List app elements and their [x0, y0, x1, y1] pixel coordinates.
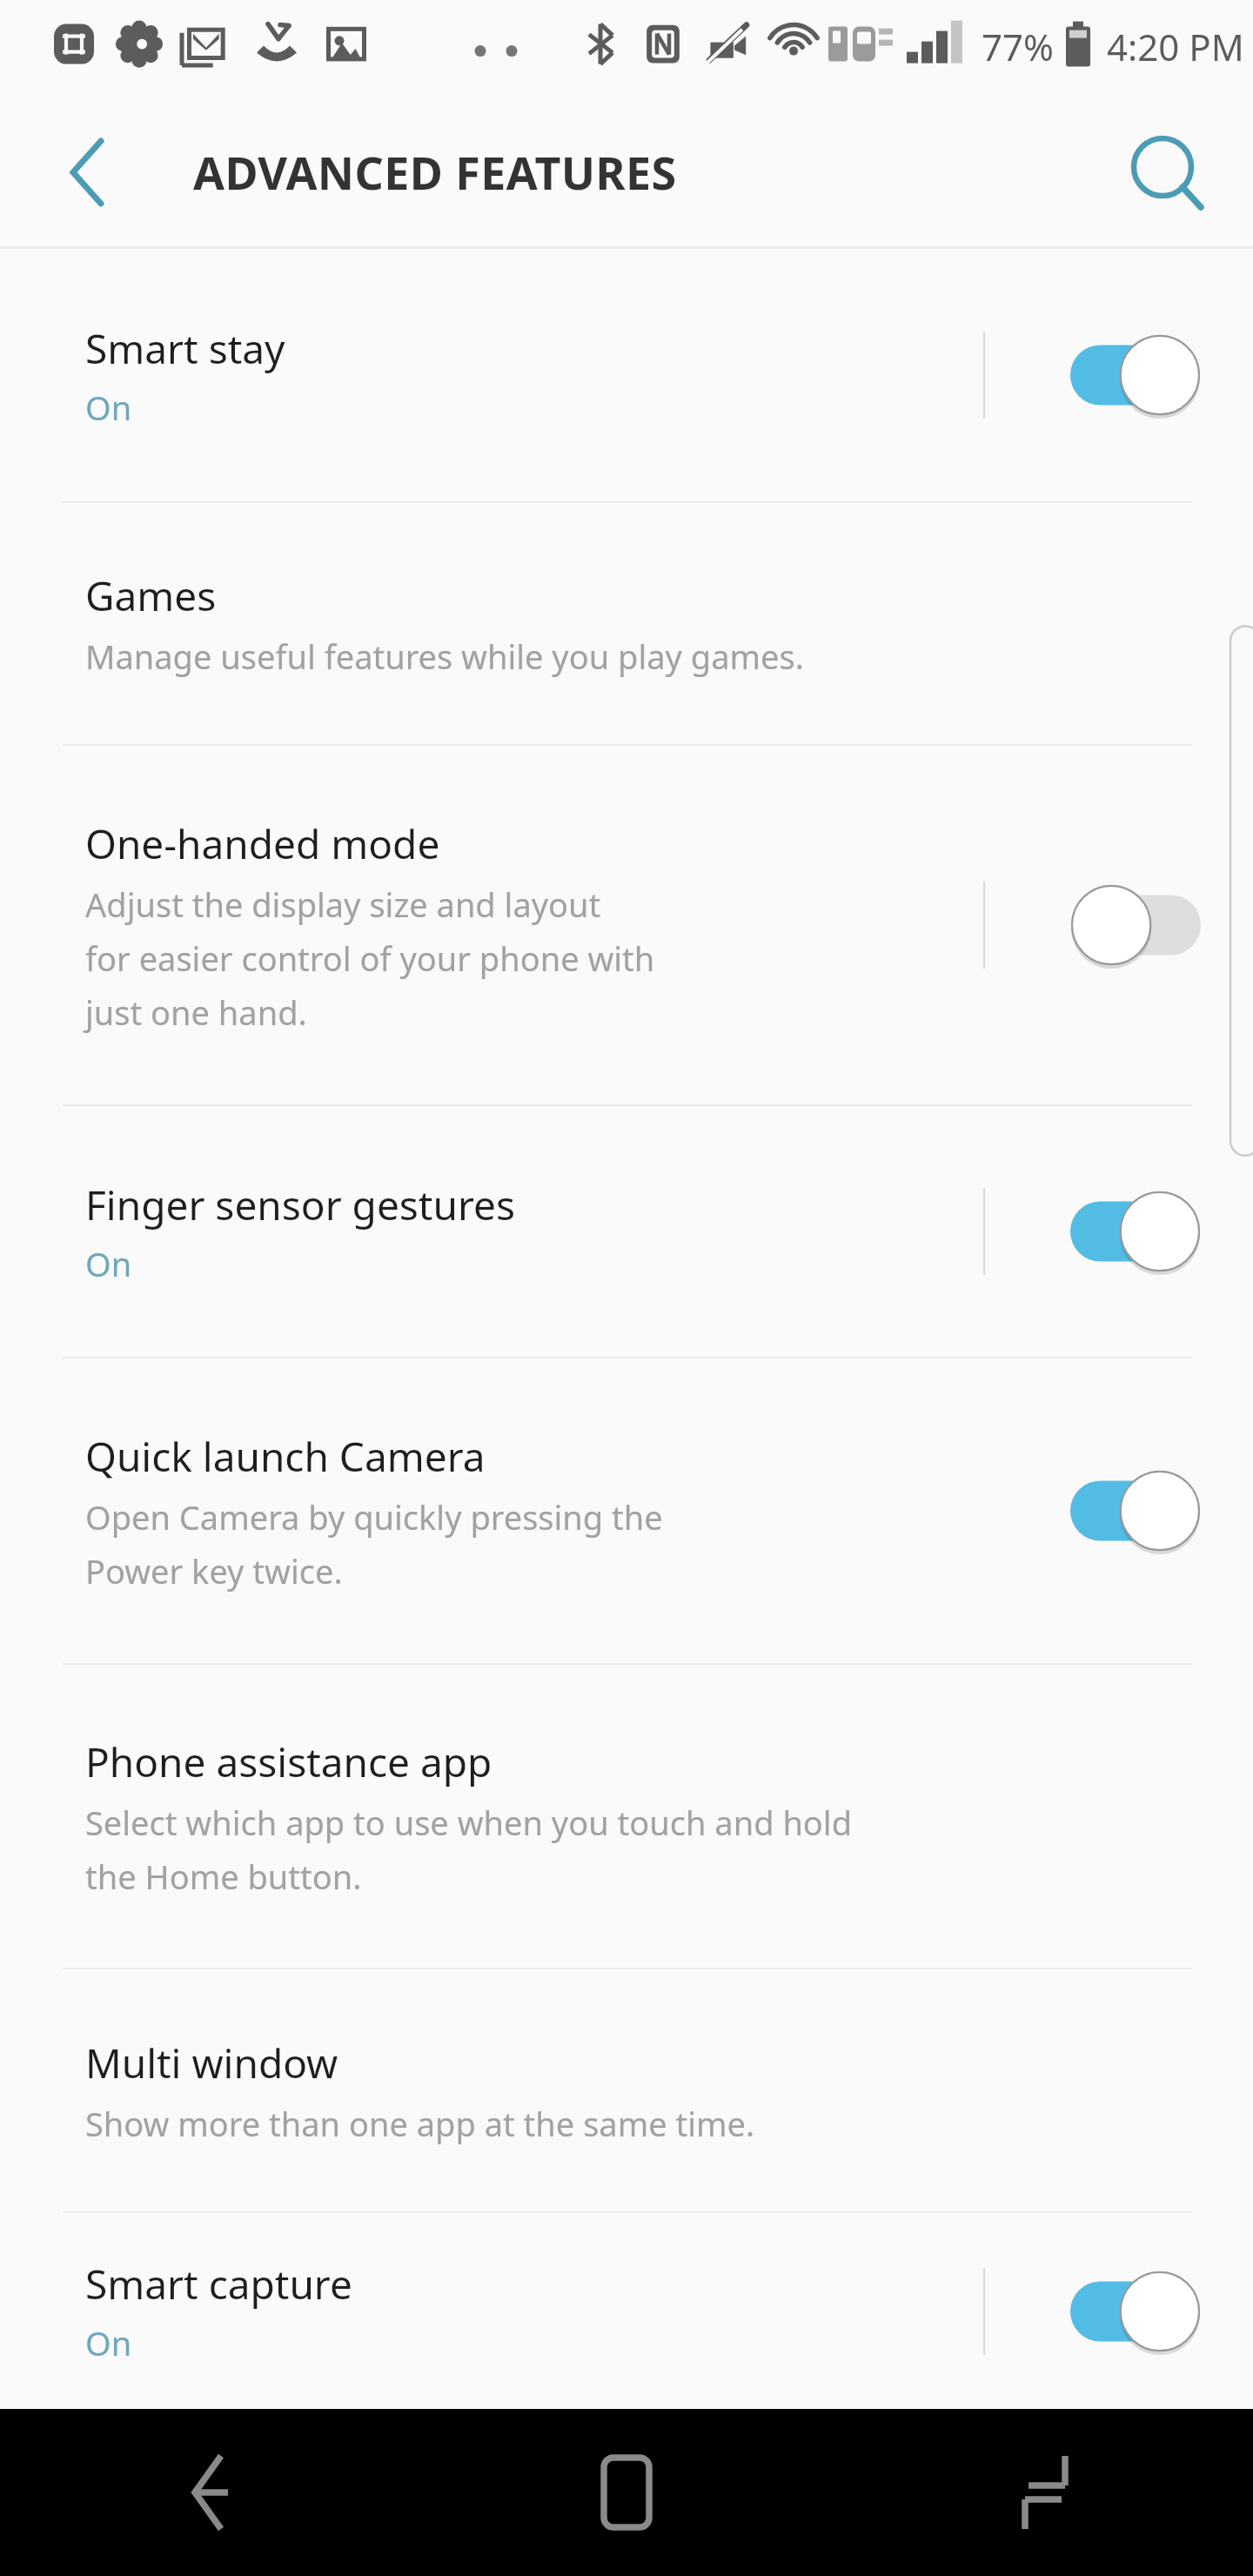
staticText: One-handed mode	[85, 816, 440, 871]
staticText: Finger sensor gestures	[85, 1177, 515, 1232]
staticText: Games	[85, 568, 217, 623]
button[interactable]: Quick launch Camera	[0, 1358, 1253, 1663]
button[interactable]: Home	[418, 2409, 835, 2576]
button[interactable]: One-handed mode	[0, 746, 1253, 1104]
staticText: Adjust the display size and layout for e…	[85, 882, 655, 1035]
button[interactable]: Back	[0, 2409, 418, 2576]
staticText: 4:20 PM	[1107, 22, 1244, 71]
button[interactable]: Toggle on	[983, 249, 1253, 501]
staticText: Quick launch Camera	[85, 1429, 486, 1484]
button[interactable]: Back	[35, 120, 139, 225]
staticText: Manage useful features while you play ga…	[85, 634, 804, 679]
staticText: Multi window	[85, 2036, 338, 2090]
staticText: Open Camera by quickly pressing the Powe…	[85, 1494, 663, 1593]
button[interactable]: Toggle on	[983, 2213, 1253, 2409]
button[interactable]: Toggle on	[983, 1358, 1253, 1663]
staticText: On	[85, 385, 132, 430]
button[interactable]: Games	[0, 503, 1253, 744]
staticText: Show more than one app at the same time.	[85, 2101, 755, 2146]
staticText: On	[85, 2320, 132, 2365]
button[interactable]: Toggle on	[983, 1106, 1253, 1357]
staticText: ADVANCED FEATURES	[193, 141, 677, 203]
button[interactable]: Smart stay	[0, 249, 1253, 501]
button[interactable]: Recents	[835, 2409, 1253, 2576]
staticText: Select which app to use when you touch a…	[85, 1800, 853, 1899]
staticText: Smart capture	[85, 2257, 352, 2311]
staticText: Smart stay	[85, 321, 285, 376]
button[interactable]: Smart capture	[0, 2213, 1253, 2409]
button[interactable]: Finger sensor gestures	[0, 1106, 1253, 1357]
button[interactable]: Phone assistance app	[0, 1665, 1253, 1968]
staticText: Phone assistance app	[85, 1734, 492, 1789]
staticText: On	[85, 1241, 132, 1286]
staticText: 77%	[982, 22, 1054, 71]
button[interactable]: Search	[1112, 118, 1220, 226]
button[interactable]: Toggle off	[983, 746, 1253, 1104]
button[interactable]: Multi window	[0, 1969, 1253, 2211]
